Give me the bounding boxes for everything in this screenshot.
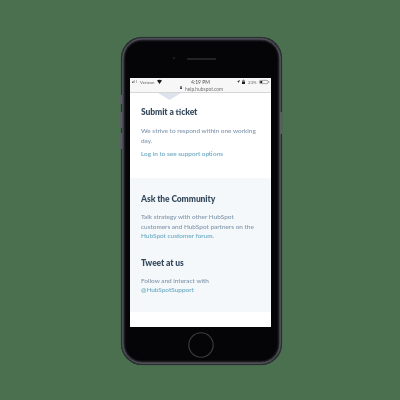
button[interactable]: @HubSpotSupport bbox=[141, 286, 194, 294]
staticText: 23% bbox=[248, 80, 257, 85]
button[interactable]: HubSpot customer forum. bbox=[141, 232, 215, 240]
staticText: Submit a ticket bbox=[141, 107, 198, 117]
staticText: customers and HubSpot partners on the bbox=[141, 223, 254, 231]
button[interactable]: Log in to see support options bbox=[141, 150, 224, 158]
staticText: Follow and interact with bbox=[141, 277, 209, 285]
staticText: Talk strategy with other HubSpot bbox=[141, 213, 234, 221]
staticText: Ask the Community bbox=[141, 194, 216, 204]
staticText: Tweet at us bbox=[141, 258, 184, 268]
staticText: help.hubspot.com bbox=[185, 86, 224, 92]
staticText: day. bbox=[141, 137, 153, 145]
staticText: We strive to respond within one working bbox=[141, 127, 256, 135]
staticText: Verizon bbox=[140, 80, 155, 85]
staticText: 4:19 PM bbox=[191, 79, 210, 85]
